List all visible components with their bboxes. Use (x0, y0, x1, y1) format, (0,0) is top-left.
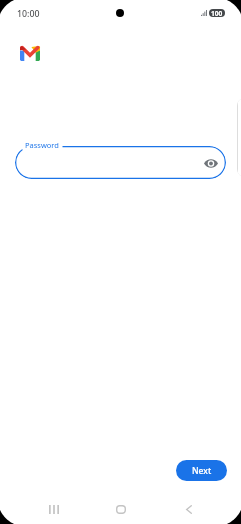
button[interactable]: Show password (202, 154, 220, 172)
staticText: Password (25, 140, 59, 150)
staticText: Next (192, 465, 212, 477)
button[interactable]: Back (172, 493, 206, 524)
button[interactable]: Home (104, 493, 138, 524)
staticText: 10:00 (17, 8, 40, 20)
button[interactable]: Next (176, 460, 227, 481)
button[interactable]: Recent apps (37, 493, 71, 524)
button[interactable]: Show password (15, 146, 226, 179)
staticText: 100 (211, 9, 223, 17)
